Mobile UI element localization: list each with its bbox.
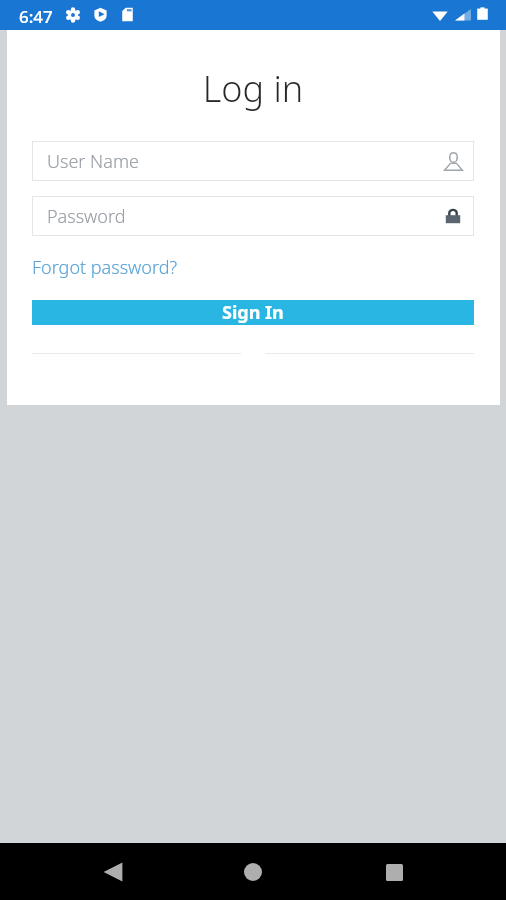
staticText: 6:47 [19,5,53,28]
staticText: Forgot password? [32,255,178,280]
button[interactable]: Password [32,196,474,236]
button[interactable]: Sign In [32,300,474,325]
staticText: Sign In [222,300,284,325]
button[interactable]: Home [225,844,281,900]
button[interactable]: Back [85,844,141,900]
staticText: Password [47,204,126,229]
staticText: Log in [32,64,474,113]
button[interactable]: Recent apps [366,844,422,900]
staticText: User Name [47,149,139,174]
button[interactable]: Forgot password? [32,255,178,280]
button[interactable]: User Name [32,141,474,181]
